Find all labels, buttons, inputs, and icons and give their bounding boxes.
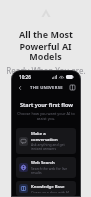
staticText: Ready When You are. [6, 65, 86, 76]
staticText: Search the web for live results [31, 166, 73, 175]
button[interactable]: Make a conversation [16, 128, 76, 154]
staticText: THE UNIVERSE [30, 85, 63, 91]
button[interactable]: Web Search [16, 157, 76, 178]
button[interactable]: Back [16, 84, 23, 91]
staticText: 10:26 [19, 74, 31, 80]
staticText: All the Most [19, 28, 73, 40]
button[interactable]: Knowledge Base [16, 181, 76, 196]
button[interactable]: Menu [69, 84, 76, 91]
staticText: Ask anything and get instant answers [31, 142, 73, 151]
staticText: Knowledge Base [31, 184, 65, 190]
staticText: Query your docs with AI assistance [31, 190, 73, 193]
staticText: Powerful AI Models [4, 40, 87, 63]
staticText: Start your first flow [20, 101, 73, 109]
staticText: Web Search [31, 160, 55, 166]
staticText: Choose how you want your AI to assist yo… [17, 111, 75, 121]
staticText: Make a conversation [31, 131, 73, 142]
